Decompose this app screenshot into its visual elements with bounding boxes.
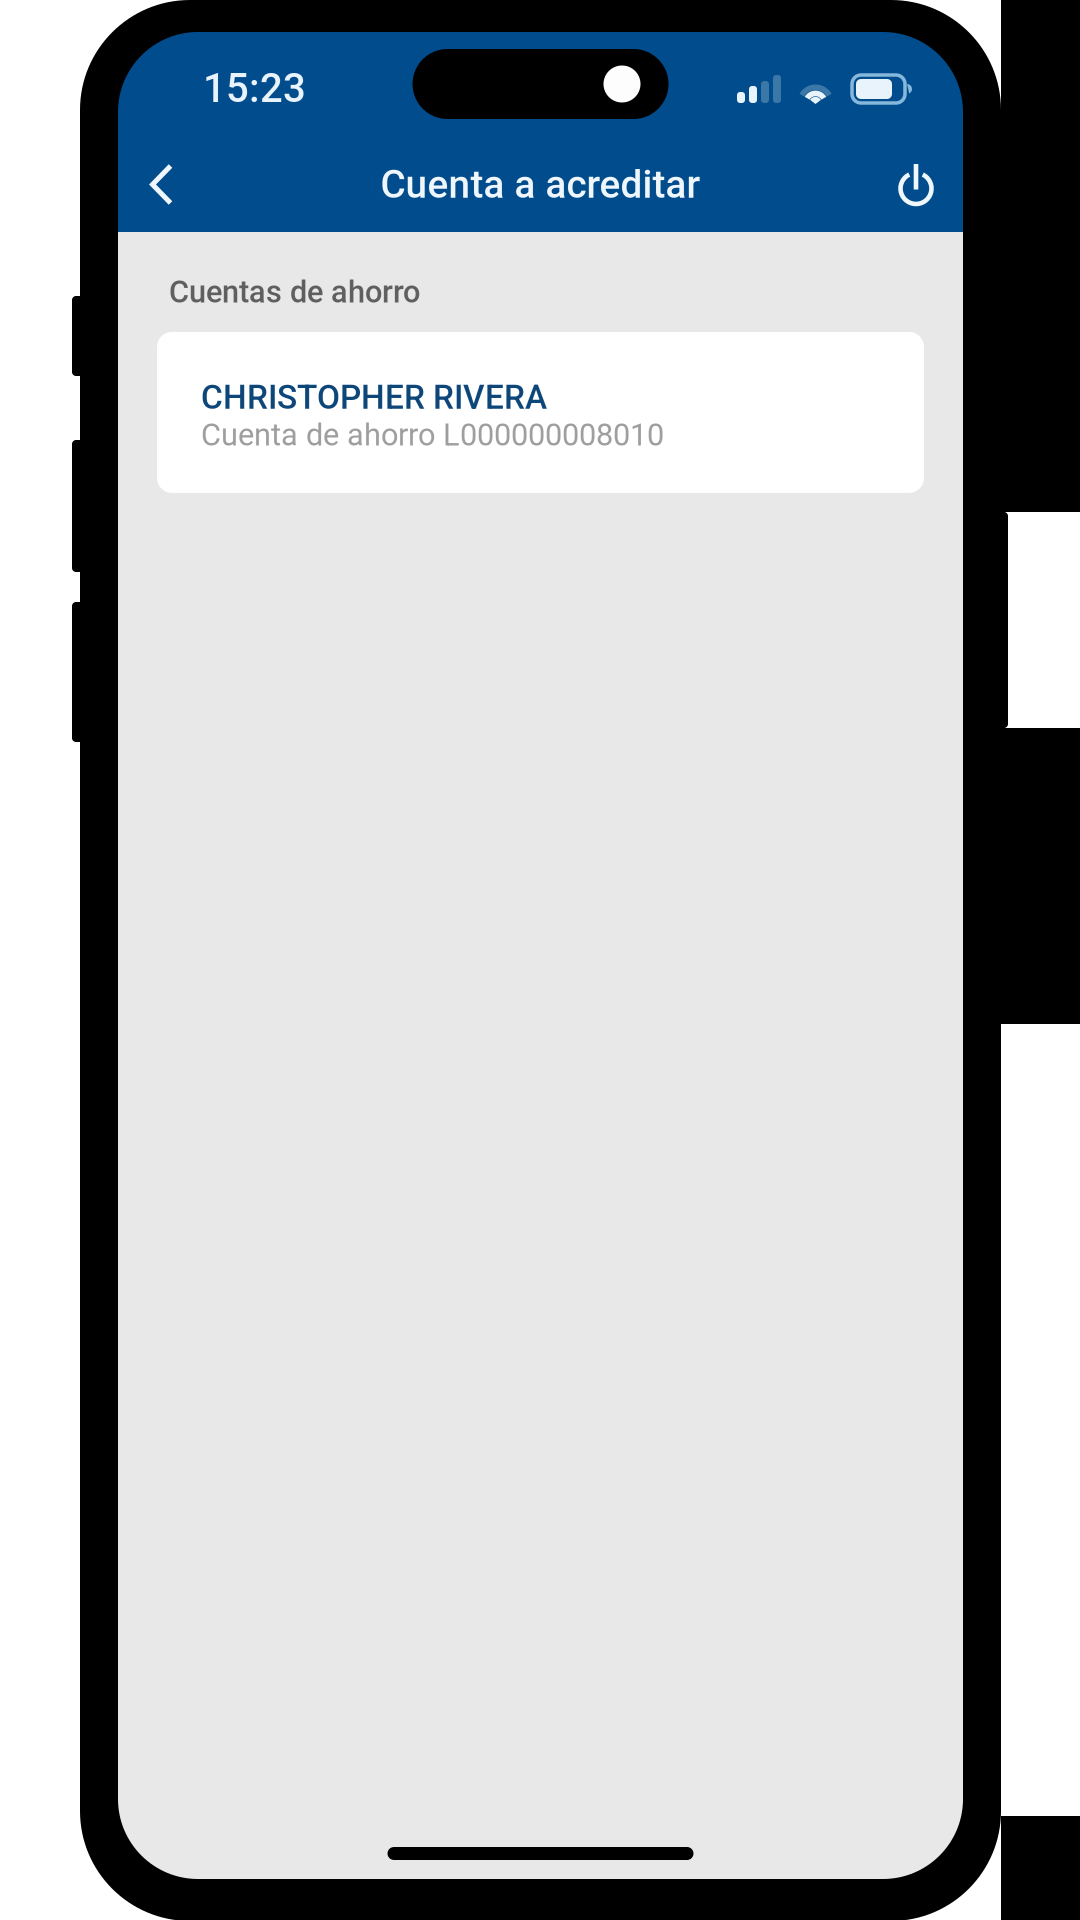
staticText: Cuentas de ahorro [169, 274, 420, 310]
staticText: Cuenta de ahorro L000000008010 [201, 417, 664, 453]
button[interactable]: Log out [875, 137, 957, 232]
button[interactable]: CHRISTOPHER RIVERA [157, 332, 924, 493]
staticText: CHRISTOPHER RIVERA [201, 378, 547, 417]
button[interactable]: Back [122, 137, 201, 232]
staticText: Cuenta a acreditar [380, 162, 700, 207]
staticText: 15:23 [203, 65, 306, 112]
